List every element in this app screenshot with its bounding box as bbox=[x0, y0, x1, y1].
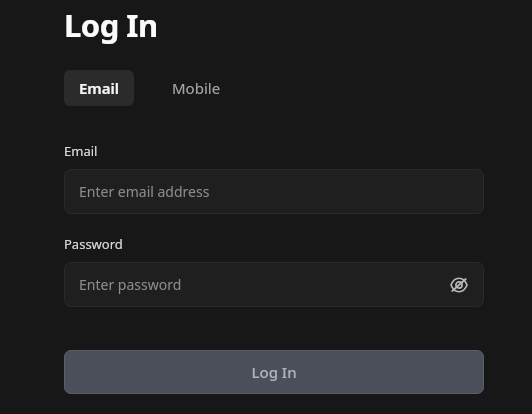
button[interactable]: Enter password bbox=[64, 262, 484, 307]
staticText: Mobile bbox=[172, 78, 221, 98]
button[interactable]: Enter email address bbox=[64, 169, 484, 214]
staticText: Email bbox=[64, 142, 98, 160]
staticText: Enter password bbox=[79, 275, 182, 294]
button[interactable]: Log In bbox=[64, 350, 484, 394]
button[interactable]: Show password bbox=[448, 274, 470, 296]
button[interactable]: Mobile bbox=[170, 70, 223, 106]
staticText: Password bbox=[64, 235, 123, 253]
staticText: Email bbox=[79, 78, 120, 98]
staticText: Log In bbox=[251, 362, 297, 382]
staticText: Log In bbox=[64, 4, 158, 46]
button[interactable]: Email bbox=[64, 70, 134, 106]
staticText: Enter email address bbox=[79, 182, 210, 201]
